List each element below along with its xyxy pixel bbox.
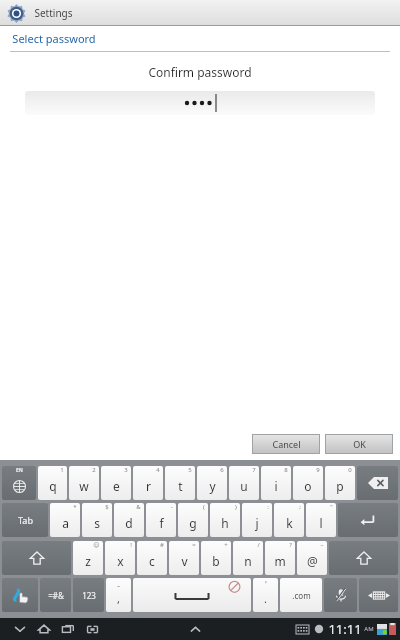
staticText: e <box>113 478 120 494</box>
button[interactable]: 123 <box>73 578 104 612</box>
staticText: p <box>336 478 344 494</box>
staticText: + <box>224 541 228 549</box>
staticText: AM <box>364 625 374 633</box>
button[interactable] <box>25 91 375 115</box>
button[interactable]: Shift <box>329 541 398 575</box>
staticText: @ <box>307 553 318 569</box>
staticText: Tab <box>18 514 33 526</box>
button[interactable]: 5 <box>165 466 195 500</box>
staticText: 1 <box>60 466 64 474</box>
button[interactable]: 8 <box>261 466 291 500</box>
staticText: c <box>149 553 155 569</box>
button[interactable]: Tab <box>2 503 48 537</box>
staticText: : <box>267 503 269 511</box>
button[interactable]: " <box>306 503 336 537</box>
staticText: =#& <box>48 590 64 601</box>
button[interactable]: - <box>106 578 131 612</box>
staticText: x <box>117 553 124 569</box>
staticText: 7 <box>252 466 256 474</box>
other: Settings <box>7 4 26 23</box>
staticText: Settings <box>34 6 73 20</box>
staticText: & <box>136 503 141 511</box>
button[interactable]: $ <box>82 503 112 537</box>
staticText: / <box>257 541 260 549</box>
button[interactable]: = <box>169 541 199 575</box>
staticText: ? <box>289 541 292 549</box>
button[interactable]: 2 <box>69 466 99 500</box>
button[interactable]: Backspace <box>357 466 398 500</box>
button[interactable]: * <box>50 503 80 537</box>
button[interactable]: Voice input disabled <box>324 578 357 612</box>
button[interactable]: 7 <box>229 466 259 500</box>
staticText: Cancel <box>272 438 301 450</box>
button[interactable]: ' <box>253 578 278 612</box>
staticText: # <box>160 541 164 549</box>
staticText: l <box>319 515 323 531</box>
staticText: 5 <box>188 466 192 474</box>
staticText: y <box>209 478 216 494</box>
button[interactable]: 0 <box>325 466 355 500</box>
staticText: .com <box>292 590 311 601</box>
staticText: Select password <box>12 31 96 46</box>
button[interactable]: - <box>146 503 176 537</box>
button[interactable]: Shift <box>2 541 71 575</box>
button[interactable]: Enter <box>338 503 398 537</box>
staticText: OK <box>353 438 366 450</box>
button[interactable]: + <box>201 541 231 575</box>
button[interactable]: ) <box>210 503 240 537</box>
button[interactable]: Handwriting <box>2 578 38 612</box>
button[interactable]: Cancel <box>253 435 319 453</box>
staticText: i <box>274 478 278 494</box>
staticText: ; <box>299 503 301 511</box>
staticText: f <box>159 515 164 531</box>
staticText: n <box>244 553 252 569</box>
button[interactable]: OK <box>326 435 392 453</box>
button[interactable]: & <box>114 503 144 537</box>
staticText: s <box>94 515 100 531</box>
button[interactable]: =#& <box>40 578 71 612</box>
button[interactable]: 1 <box>38 466 67 500</box>
button[interactable]: Space <box>133 578 251 612</box>
staticText: 123 <box>82 590 96 601</box>
staticText: b <box>212 553 220 569</box>
staticText: z <box>85 553 91 569</box>
staticText: 11:11 <box>328 620 362 638</box>
button[interactable]: 9 <box>293 466 323 500</box>
staticText: q <box>49 478 57 494</box>
staticText: ( <box>203 503 205 511</box>
button[interactable]: ; <box>274 503 304 537</box>
button[interactable]: : <box>242 503 272 537</box>
button[interactable]: Keyboard settings <box>359 578 398 612</box>
button[interactable]: ? <box>265 541 295 575</box>
button[interactable]: ☺ <box>73 541 103 575</box>
button[interactable]: ! <box>105 541 135 575</box>
button[interactable]: Change language <box>2 466 36 500</box>
staticText: 4 <box>156 466 160 474</box>
button[interactable]: ( <box>178 503 208 537</box>
staticText: h <box>221 515 229 531</box>
button[interactable]: # <box>137 541 167 575</box>
button[interactable]: 4 <box>133 466 163 500</box>
staticText: 0 <box>348 466 352 474</box>
button[interactable]: Home <box>32 618 56 640</box>
button[interactable]: Recents <box>56 618 80 640</box>
staticText: r <box>146 478 151 494</box>
button[interactable]: ~ <box>297 541 327 575</box>
button[interactable]: 3 <box>101 466 131 500</box>
staticText: w <box>79 478 89 494</box>
staticText: 2 <box>92 466 96 474</box>
button[interactable]: 6 <box>197 466 227 500</box>
staticText: - <box>171 503 173 511</box>
staticText: EN <box>16 467 23 474</box>
button[interactable]: Hide keyboard <box>8 618 32 640</box>
staticText: ) <box>235 503 237 511</box>
staticText: ' <box>265 579 267 590</box>
button[interactable]: Screenshot <box>80 618 104 640</box>
button[interactable]: Expand <box>185 619 205 639</box>
staticText: g <box>189 515 197 531</box>
staticText: " <box>330 503 333 511</box>
button[interactable]: / <box>233 541 263 575</box>
staticText: * <box>73 503 77 511</box>
staticText: v <box>181 553 188 569</box>
button[interactable]: .com <box>280 578 322 612</box>
